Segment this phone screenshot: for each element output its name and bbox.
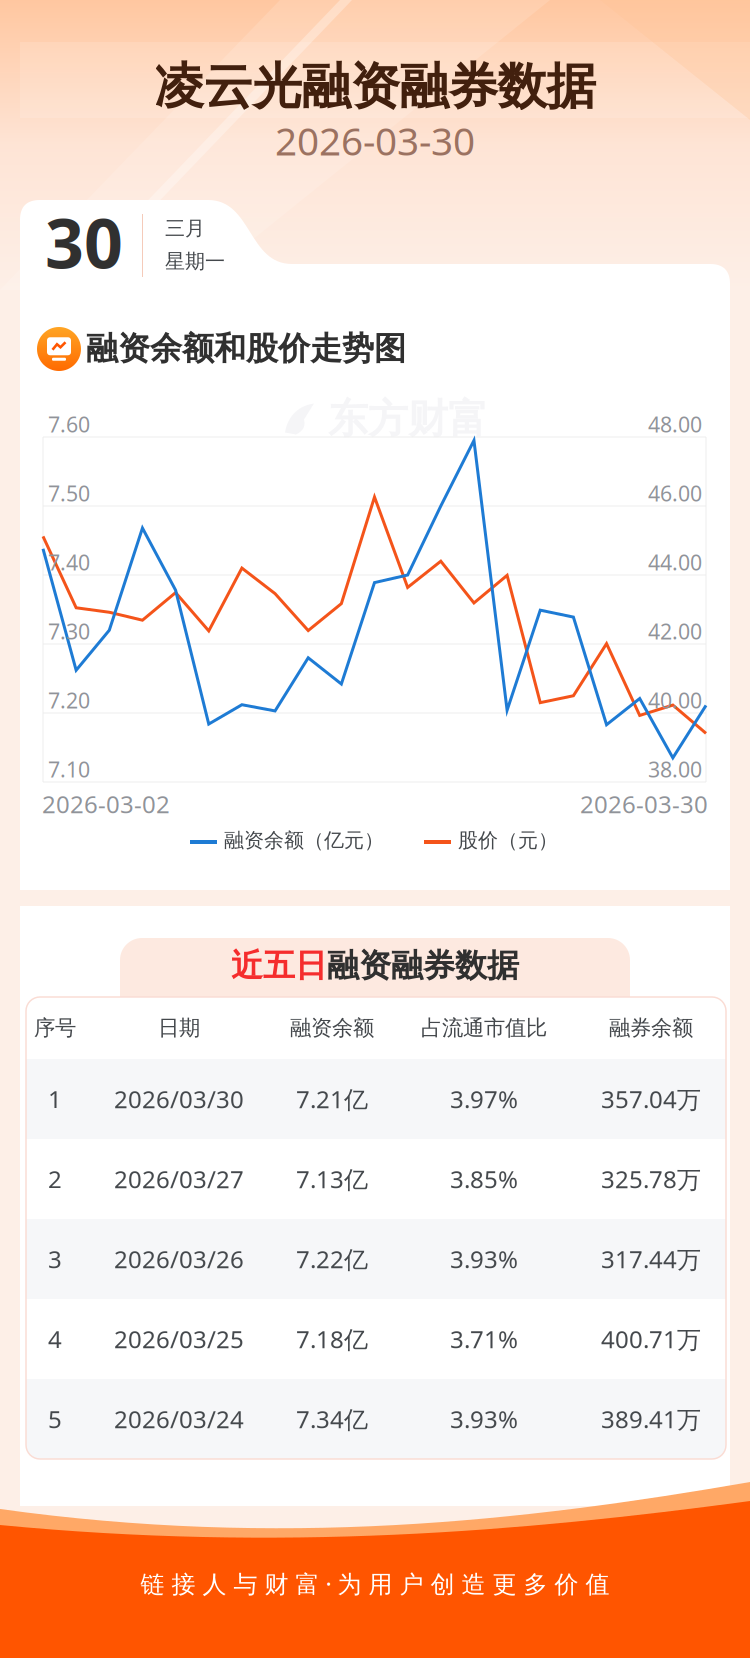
staticText: 5	[48, 1403, 62, 1435]
staticText: 38.00	[648, 755, 702, 783]
staticText: 东方财富	[328, 1204, 488, 1253]
staticText: 融券余额	[609, 1015, 693, 1041]
staticText: 3.93%	[450, 1403, 518, 1435]
staticText: 7.22亿	[296, 1243, 368, 1275]
staticText: 2026-03-30	[275, 115, 475, 166]
staticText: 2026/03/27	[114, 1163, 244, 1195]
staticText: 3	[48, 1243, 62, 1275]
staticText: 融资融券数据	[327, 946, 519, 985]
staticText: 融资余额和股价走势图	[86, 329, 406, 368]
staticText: 48.00	[648, 410, 702, 438]
staticText: 44.00	[648, 548, 702, 576]
staticText: 星期一	[165, 249, 225, 274]
staticText: 7.50	[48, 479, 90, 507]
staticText: 2026/03/24	[114, 1403, 244, 1435]
staticText: 2026/03/25	[114, 1323, 244, 1355]
staticText: 3.71%	[450, 1323, 518, 1355]
staticText: 7.60	[48, 410, 90, 438]
staticText: 融资余额（亿元）	[224, 828, 384, 853]
staticText: 2026-03-30	[580, 788, 708, 820]
staticText: 7.40	[48, 548, 90, 576]
staticText: 7.20	[48, 686, 90, 714]
staticText: 近五日	[231, 946, 327, 985]
staticText: 4	[48, 1323, 62, 1355]
staticText: 2026/03/26	[114, 1243, 244, 1275]
staticText: 389.41万	[601, 1403, 701, 1435]
staticText: 7.30	[48, 617, 90, 645]
staticText: 三月	[165, 216, 205, 241]
staticText: 40.00	[648, 686, 702, 714]
staticText: 46.00	[648, 479, 702, 507]
staticText: 1	[48, 1083, 62, 1115]
staticText: 7.18亿	[296, 1323, 368, 1355]
staticText: 30	[45, 197, 123, 287]
staticText: 2026-03-02	[42, 788, 170, 820]
staticText: 3.97%	[450, 1083, 518, 1115]
staticText: 融资余额	[290, 1015, 374, 1041]
staticText: 3.93%	[450, 1243, 518, 1275]
staticText: 400.71万	[601, 1323, 701, 1355]
staticText: 2026/03/30	[114, 1083, 244, 1115]
staticText: 7.34亿	[296, 1403, 368, 1435]
staticText: 317.44万	[601, 1243, 701, 1275]
staticText: 2	[48, 1163, 62, 1195]
staticText: 357.04万	[601, 1083, 701, 1115]
staticText: 股价（元）	[458, 828, 558, 853]
staticText: 占流通市值比	[421, 1015, 547, 1041]
staticText: 325.78万	[601, 1163, 701, 1195]
staticText: 序号	[34, 1015, 76, 1041]
staticText: 7.13亿	[296, 1163, 368, 1195]
staticText: 东方财富	[328, 394, 488, 443]
staticText: 42.00	[648, 617, 702, 645]
staticText: 链 接 人 与 财 富 · 为 用 户 创 造 更 多 价 值	[140, 1568, 609, 1599]
staticText: 日期	[158, 1015, 200, 1041]
staticText: 凌云光融资融券数据	[154, 56, 595, 117]
staticText: 3.85%	[450, 1163, 518, 1195]
staticText: 7.10	[48, 755, 90, 783]
staticText: 7.21亿	[296, 1083, 368, 1115]
